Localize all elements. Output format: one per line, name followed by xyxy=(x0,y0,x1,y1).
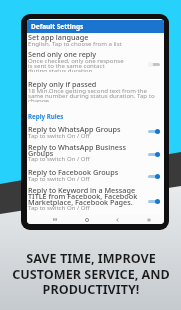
staticText: Tap to switch On / Off xyxy=(28,131,90,139)
staticText: Set app language xyxy=(28,32,149,42)
button[interactable]: Back xyxy=(102,215,133,224)
button[interactable]: Keyboard xyxy=(133,215,164,224)
staticText: English. Tap to choose from a list xyxy=(28,39,122,47)
button[interactable]: Reply only if passed xyxy=(27,78,164,94)
staticText: Tap to switch On / Off xyxy=(28,154,90,162)
staticText: Reply only if passed xyxy=(28,79,149,89)
staticText: Reply to Facebook Groups xyxy=(28,167,149,177)
button[interactable]: Set app language xyxy=(27,31,164,47)
button[interactable]: Send only one reply xyxy=(27,48,164,64)
staticText: Once checked, only one response is sent … xyxy=(28,56,124,72)
button[interactable]: Recent apps xyxy=(39,215,71,224)
staticText: SAVE TIME, IMPROVE CUSTOMER SERVICE, AND… xyxy=(12,250,170,297)
button[interactable]: Reply to Facebook Groups xyxy=(27,166,164,182)
button[interactable]: Reply to Keyword in a Message TITLE from… xyxy=(27,184,164,211)
button[interactable]: Home xyxy=(71,215,102,224)
staticText: Reply to WhatsApp Groups xyxy=(28,124,149,134)
staticText: Default Settings xyxy=(31,22,84,31)
staticText: Reply to Keyword in a Message TITLE from… xyxy=(28,185,149,207)
staticText: Tap to switch On / Off xyxy=(28,203,90,211)
staticText: Reply Rules xyxy=(28,112,64,120)
staticText: Tap to switch On / Off xyxy=(28,174,90,182)
staticText: Reply to WhatsApp Business Groups xyxy=(28,142,149,158)
staticText: Send only one reply xyxy=(28,49,149,59)
button[interactable]: Reply to WhatsApp Groups xyxy=(27,123,164,139)
staticText: 18 Min.Once getting second text from the… xyxy=(28,86,155,102)
button[interactable]: Reply to WhatsApp Business Groups xyxy=(27,141,164,162)
